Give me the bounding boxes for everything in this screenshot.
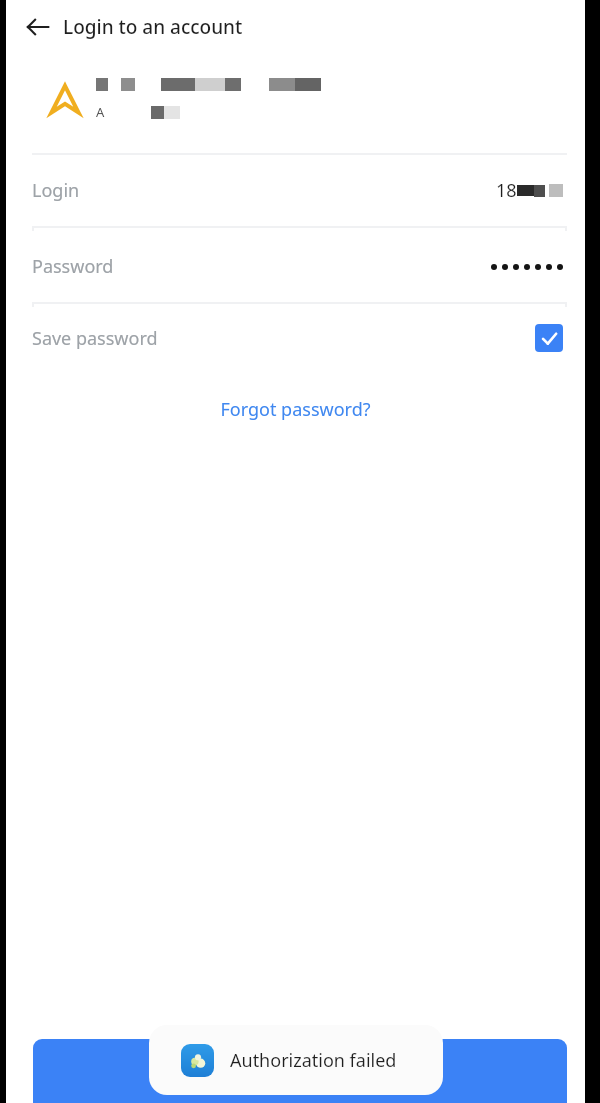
staticText: Login to an account	[63, 14, 243, 40]
button[interactable]: Forgot password?	[212, 393, 379, 426]
staticText: Save password	[32, 326, 158, 351]
button[interactable]: A	[6, 54, 585, 144]
staticText: Forgot password?	[220, 397, 371, 422]
staticText: 18	[496, 178, 517, 203]
button[interactable]: Save password	[6, 307, 585, 369]
button[interactable]: Back	[18, 7, 58, 47]
staticText: Login	[32, 178, 80, 203]
staticText: Password	[32, 254, 114, 279]
button[interactable]: Authorization failed	[149, 1025, 443, 1095]
staticText: Authorization failed	[230, 1048, 397, 1073]
staticText: A	[96, 103, 105, 121]
button[interactable]: Password	[6, 231, 585, 302]
button[interactable]: Login	[6, 155, 585, 226]
button[interactable]: Log in	[33, 1039, 567, 1103]
